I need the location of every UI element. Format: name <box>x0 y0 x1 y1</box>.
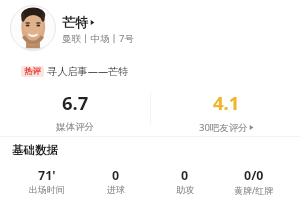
staticText: 0/0 <box>244 167 264 184</box>
staticText: 30吧友评分 <box>199 121 248 134</box>
staticText: 进球 <box>107 184 125 195</box>
staticText: 助攻 <box>176 184 194 195</box>
staticText: 寻人启事——芒特 <box>47 64 129 78</box>
staticText: 6.7 <box>62 90 89 115</box>
staticText: 基础数据 <box>12 143 58 157</box>
staticText: 0 <box>112 167 120 184</box>
staticText: 黄牌/红牌 <box>234 184 274 195</box>
staticText: 0 <box>181 167 189 184</box>
button[interactable]: 热评 <box>21 64 129 78</box>
button[interactable]: Player photo <box>10 5 56 51</box>
staticText: 芒特 <box>62 14 88 30</box>
button[interactable]: 71' <box>12 167 81 195</box>
button[interactable]: 0 <box>150 167 219 195</box>
button[interactable]: 0 <box>81 167 150 195</box>
button[interactable]: 4.1 <box>153 90 300 134</box>
staticText: 热评 <box>24 66 41 77</box>
button[interactable]: 6.7 <box>0 90 150 134</box>
staticText: 4.1 <box>213 90 240 115</box>
staticText: 71' <box>38 167 56 184</box>
staticText: 媒体评分 <box>56 121 94 133</box>
button[interactable]: 0/0 <box>219 167 288 195</box>
button[interactable]: 芒特 <box>62 14 95 30</box>
staticText: 曼联丨中场丨7号 <box>62 32 134 45</box>
staticText: 出场时间 <box>29 184 65 195</box>
button[interactable] <box>0 2 300 54</box>
